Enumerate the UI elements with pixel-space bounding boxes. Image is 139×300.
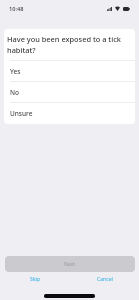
button[interactable]: Cancel: [94, 272, 115, 286]
other: Battery: [123, 7, 130, 11]
staticText: Unsure: [10, 109, 33, 118]
other: Wi-Fi: [115, 7, 120, 11]
staticText: Cancel: [97, 276, 113, 283]
staticText: Have you been exposed to a tick habitat?: [7, 34, 127, 55]
staticText: No: [10, 88, 20, 97]
staticText: 10:48: [9, 5, 24, 13]
staticText: Yes: [10, 67, 21, 76]
button[interactable]: Next: [5, 256, 135, 272]
button[interactable]: Unsure: [4, 102, 135, 123]
button[interactable]: No: [4, 81, 135, 102]
button[interactable]: Yes: [4, 60, 135, 81]
other: Cellular signal: [107, 7, 112, 11]
button[interactable]: Skip: [24, 272, 45, 286]
staticText: Next: [64, 261, 76, 268]
staticText: Skip: [30, 276, 40, 283]
